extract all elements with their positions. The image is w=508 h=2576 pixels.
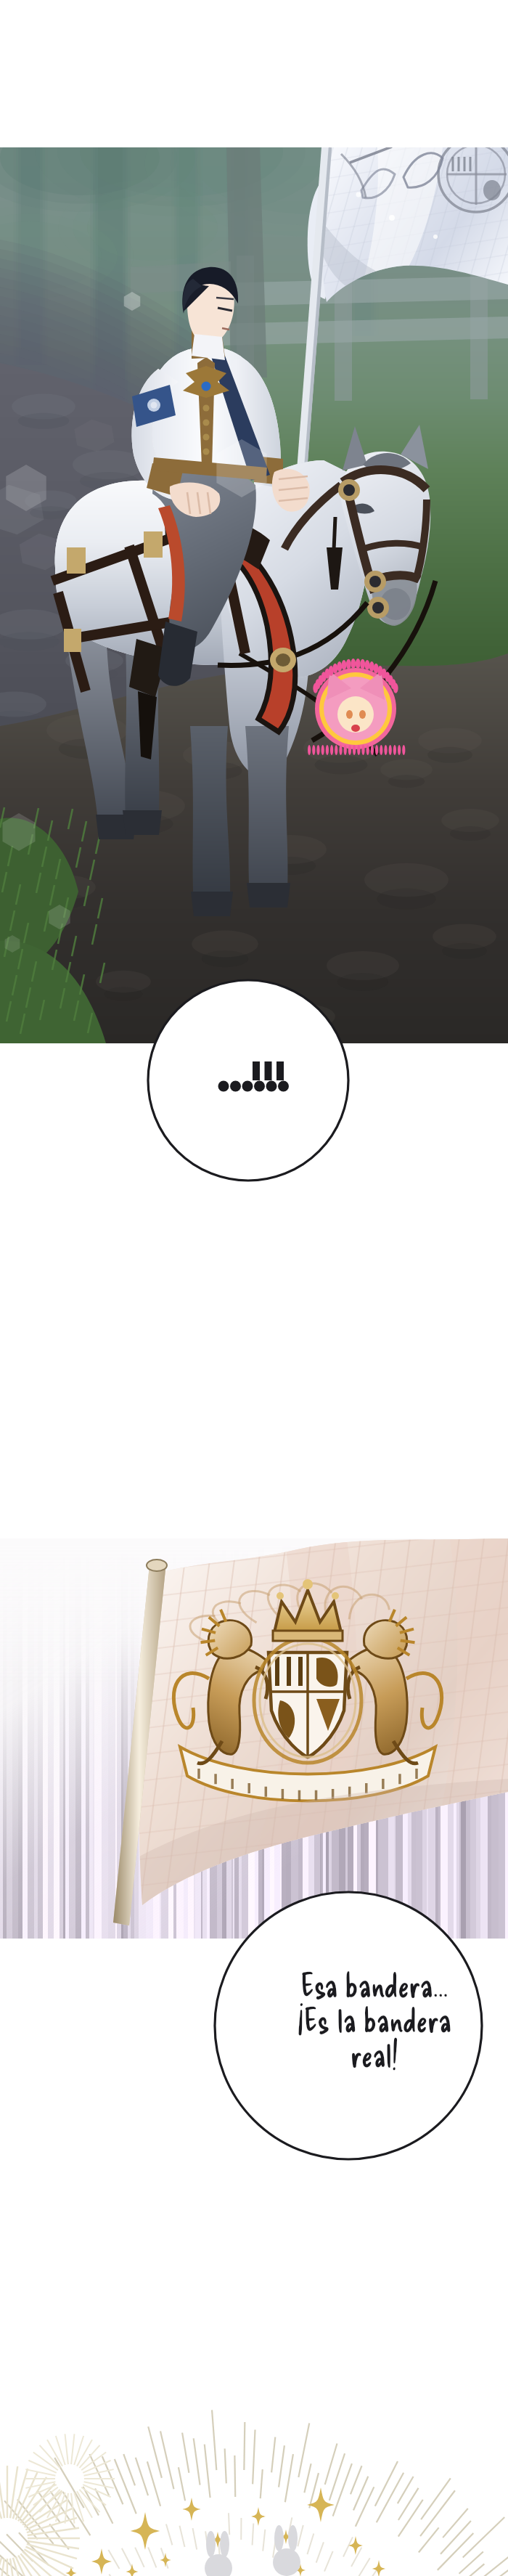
button[interactable] <box>0 0 508 2576</box>
